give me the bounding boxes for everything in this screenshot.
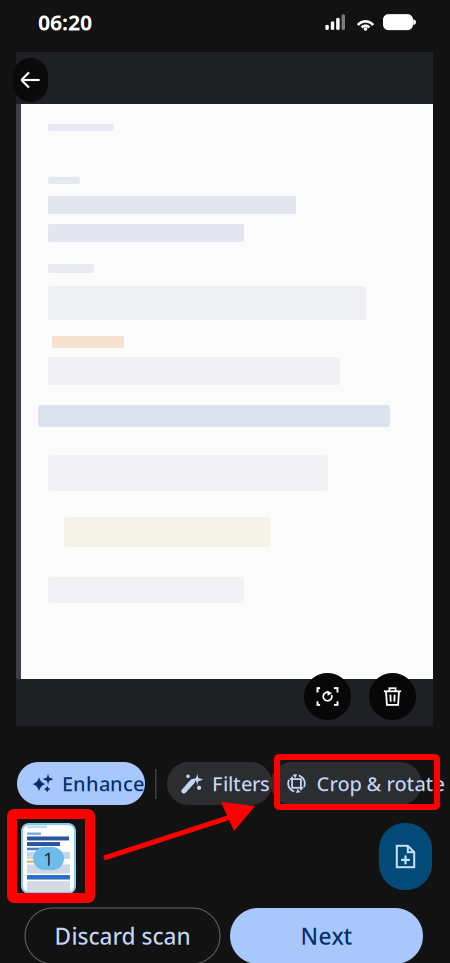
button[interactable]: Filters [167,762,272,805]
button[interactable]: Delete page [369,673,416,720]
staticText: Enhance [62,770,144,797]
staticText: Discard scan [54,921,190,951]
button[interactable]: Next [230,908,423,963]
staticText: 06:20 [38,8,92,36]
button[interactable]: Page 1 [22,824,75,893]
staticText: 1 [43,846,54,871]
button[interactable]: Rescan page [304,673,351,720]
button[interactable]: Back [13,58,48,102]
button[interactable]: Enhance [17,762,145,805]
staticText: Crop & rotate [316,770,444,797]
staticText: Next [300,921,352,951]
staticText: Filters [212,770,270,797]
button[interactable]: Discard scan [25,908,220,963]
button[interactable]: Add page [379,823,432,890]
button[interactable]: Crop & rotate [282,762,433,805]
